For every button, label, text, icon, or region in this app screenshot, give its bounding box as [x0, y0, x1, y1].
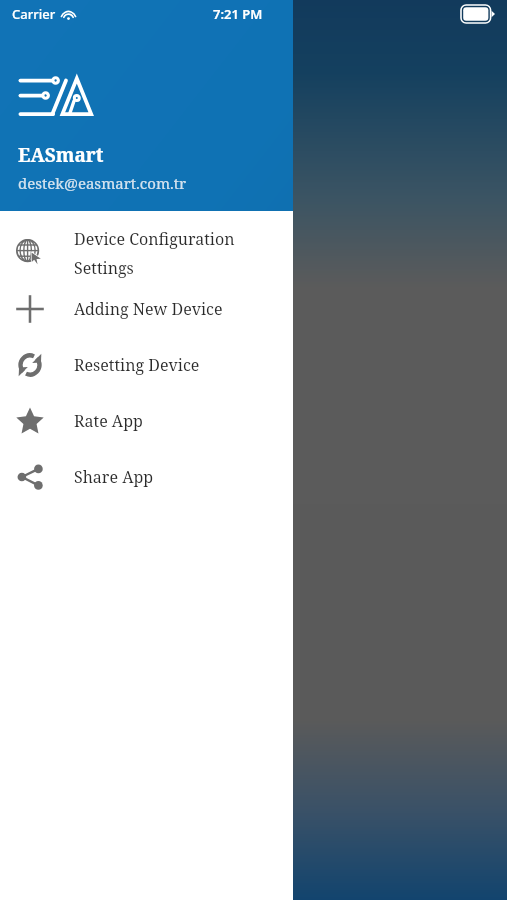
button[interactable]: Share App [0, 449, 293, 505]
staticText: Adding New Device [74, 298, 223, 320]
staticText: destek@easmart.com.tr [18, 173, 187, 193]
staticText: Share App [74, 466, 154, 488]
staticText: 7:21 PM [213, 5, 263, 23]
staticText: Carrier [12, 5, 56, 23]
button[interactable]: Resetting Device [0, 337, 293, 393]
staticText: Device Configuration Settings [74, 228, 283, 278]
button[interactable]: Device Configuration Settings [0, 225, 293, 281]
other: Battery [461, 5, 495, 23]
button[interactable]: Rate App [0, 393, 293, 449]
staticText: EASmart [18, 142, 104, 168]
button[interactable]: Adding New Device [0, 281, 293, 337]
staticText: Resetting Device [74, 354, 200, 376]
staticText: Rate App [74, 410, 143, 432]
